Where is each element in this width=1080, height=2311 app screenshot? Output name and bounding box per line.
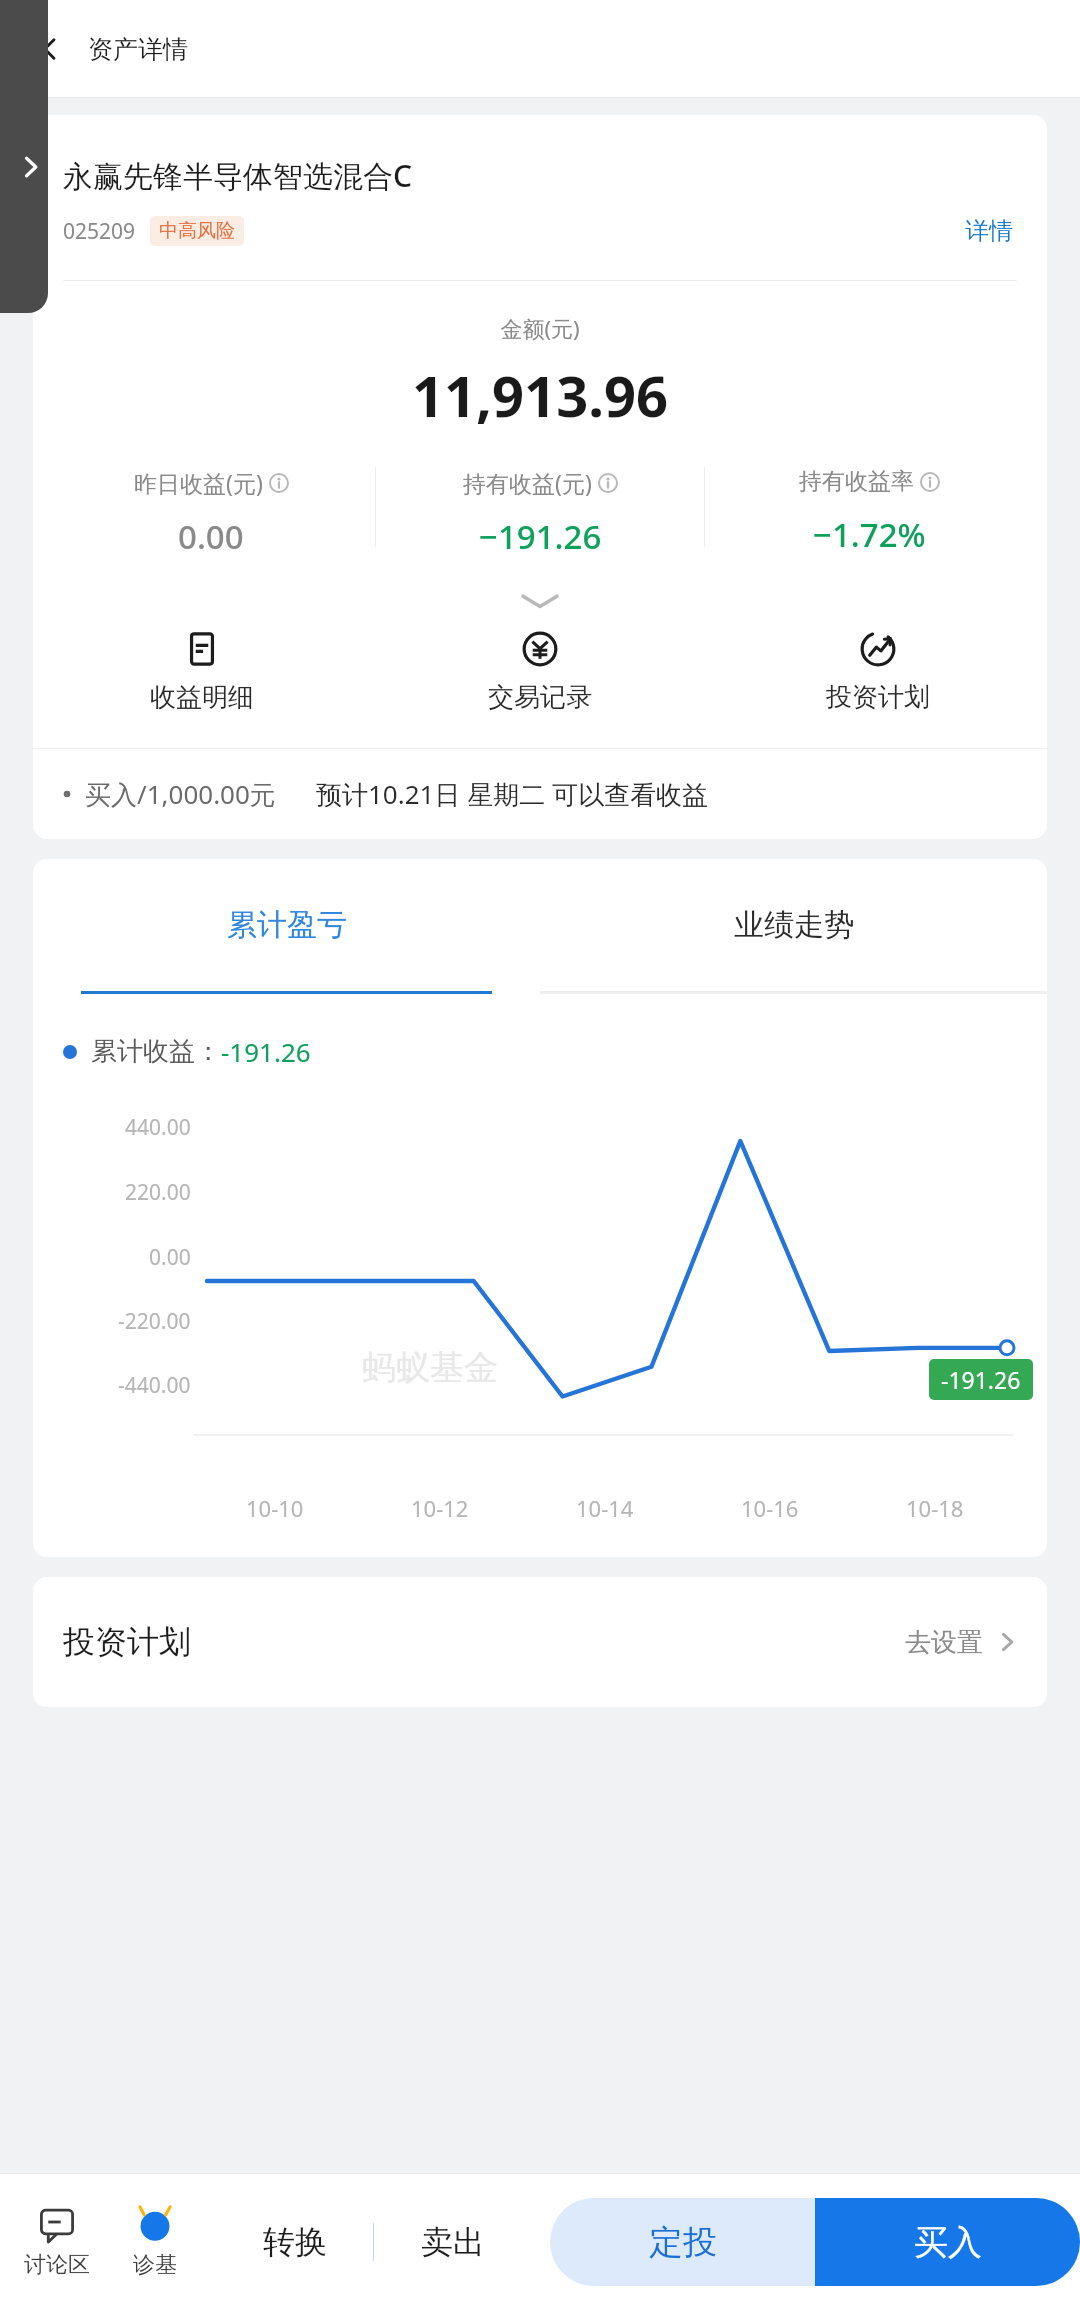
- button[interactable]: 详情: [961, 212, 1017, 250]
- button[interactable]: Back: [26, 25, 74, 73]
- button[interactable]: 业绩走势: [540, 859, 1047, 991]
- staticText: 交易记录: [488, 681, 592, 714]
- staticText: 投资计划: [826, 681, 930, 714]
- staticText: 买入: [914, 2221, 982, 2264]
- button[interactable]: 定投: [550, 2198, 815, 2286]
- staticText: 0.00: [149, 1243, 191, 1272]
- staticText: 440.00: [125, 1113, 191, 1142]
- staticText: 转换: [263, 2222, 327, 2262]
- staticText: 收益明细: [150, 681, 254, 714]
- staticText: 蚂蚁基金: [362, 1346, 498, 1389]
- staticText: 金额(元): [33, 313, 1047, 343]
- staticText: -191.26: [941, 1364, 1021, 1395]
- staticText: -440.00: [118, 1371, 191, 1400]
- button[interactable]: Expand: [523, 593, 557, 609]
- button[interactable]: 收益明细: [33, 625, 371, 720]
- staticText: 10-16: [741, 1493, 799, 1523]
- staticText: 持有收益(元): [463, 467, 592, 498]
- staticText: 讨论区: [24, 2251, 90, 2279]
- staticText: 详情: [965, 216, 1013, 246]
- staticText: 定投: [649, 2221, 717, 2264]
- button[interactable]: 累计盈亏: [33, 859, 540, 991]
- staticText: 持有收益率: [799, 467, 914, 496]
- staticText: 资产详情: [88, 34, 188, 65]
- staticText: 买入/1,000.00元: [85, 776, 276, 812]
- staticText: 永赢先锋半导体智选混合C: [63, 155, 413, 196]
- button[interactable]: Open panel: [0, 0, 48, 313]
- staticText: 投资计划: [63, 1622, 191, 1662]
- button[interactable]: 投资计划: [709, 625, 1047, 720]
- staticText: 10-12: [411, 1493, 469, 1523]
- staticText: 昨日收益(元): [134, 467, 263, 498]
- button[interactable]: 持有收益(元): [376, 467, 704, 559]
- staticText: 累计盈亏: [227, 906, 347, 944]
- staticText: −1.72%: [813, 512, 926, 557]
- staticText: 卖出: [421, 2222, 485, 2262]
- staticText: 去设置: [905, 1626, 983, 1659]
- staticText: 业绩走势: [734, 906, 854, 944]
- staticText: 11,913.96: [33, 357, 1047, 433]
- staticText: 220.00: [125, 1178, 191, 1207]
- button[interactable]: 卖出: [374, 2198, 532, 2286]
- staticText: 诊基: [133, 2251, 177, 2279]
- staticText: 累计收益：: [91, 1035, 221, 1068]
- staticText: 0.00: [178, 514, 244, 559]
- button[interactable]: 买入: [815, 2198, 1080, 2286]
- staticText: 10-10: [246, 1493, 304, 1523]
- button[interactable]: 诊基: [106, 2205, 204, 2279]
- button[interactable]: 投资计划: [33, 1577, 1047, 1707]
- button[interactable]: 讨论区: [8, 2205, 106, 2279]
- button[interactable]: 转换: [216, 2198, 373, 2286]
- button[interactable]: 交易记录: [371, 625, 709, 720]
- button[interactable]: 买入/1,000.00元: [33, 749, 1047, 839]
- staticText: 中高风险: [159, 219, 235, 243]
- staticText: 10-18: [906, 1493, 964, 1523]
- staticText: 10-14: [576, 1493, 634, 1523]
- button[interactable]: 昨日收益(元): [47, 467, 375, 559]
- staticText: -191.26: [221, 1034, 311, 1069]
- staticText: 预计10.21日 星期二 可以查看收益: [316, 776, 708, 812]
- button[interactable]: 持有收益率: [705, 467, 1033, 557]
- staticText: 025209: [63, 217, 136, 246]
- staticText: −191.26: [479, 514, 602, 559]
- staticText: -220.00: [118, 1307, 191, 1336]
